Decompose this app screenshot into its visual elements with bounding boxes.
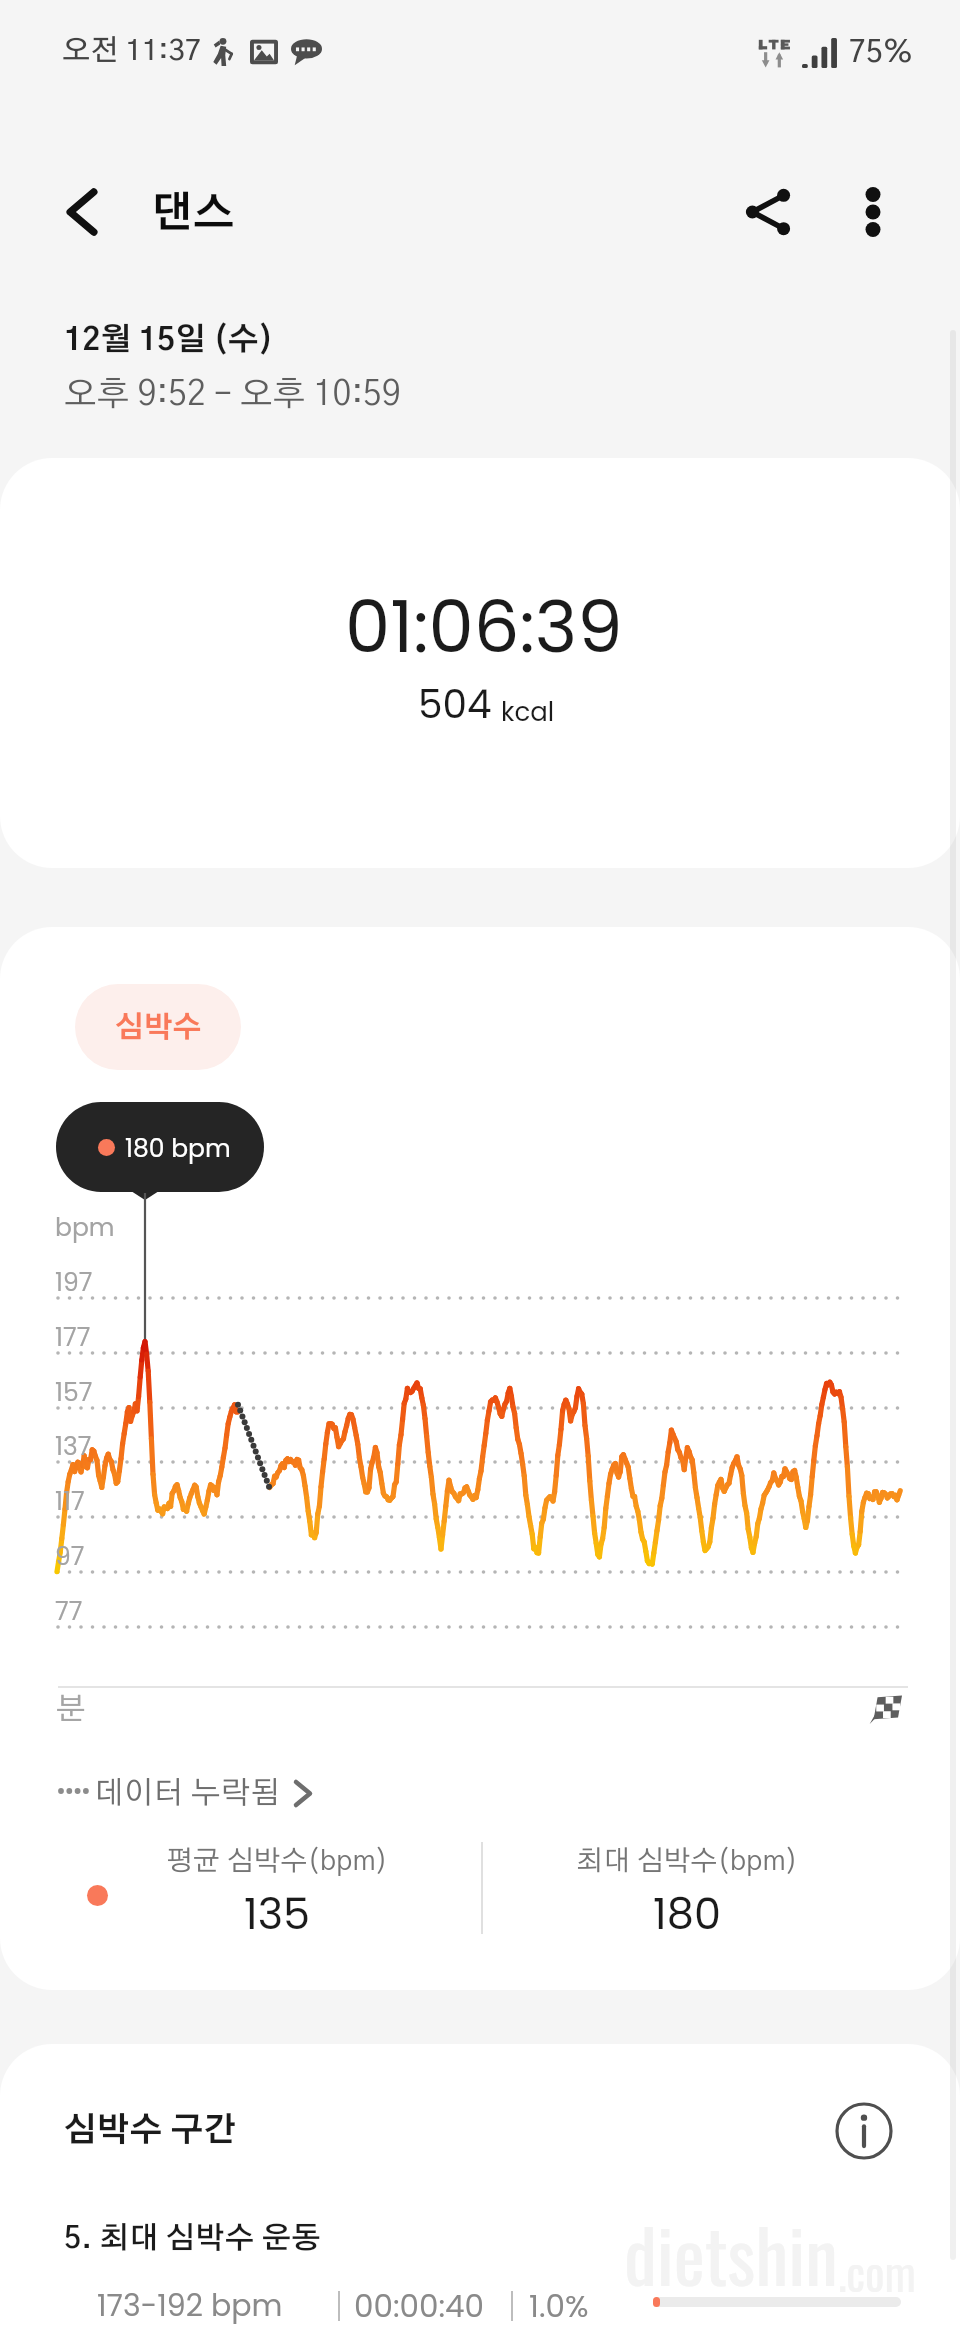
staticText: 심박수 [115,1014,202,1043]
staticText: 평균 심박수(bpm) [166,1848,389,1876]
staticText: 180 [653,1884,721,1944]
staticText: bpm [55,1210,115,1245]
staticText: kcal [501,694,555,730]
staticText: 00:00:40 [354,2284,485,2327]
staticText: 197 [55,1265,93,1300]
button[interactable]: 데이터 누락됨 [50,1772,321,1815]
staticText: 504 [418,677,492,732]
staticText: 173-192 bpm [97,2285,283,2327]
staticText: dietshin [624,2198,838,2308]
staticText: 심박수 구간 [64,2115,237,2148]
staticText: 데이터 누락됨 [94,1778,281,1809]
staticText: 5. 최대 심박수 운동 [64,2224,321,2254]
staticText: .com [838,2237,916,2305]
staticText: 오후 9:52 – 오후 10:59 [64,378,401,412]
staticText: 157 [55,1375,93,1410]
staticText: 01:06:39 [345,576,623,677]
staticText: 135 [244,1884,311,1944]
staticText: 오전 11:37 [62,37,202,66]
staticText: 97 [55,1539,85,1574]
staticText: 분 [56,1694,86,1725]
staticText: 177 [55,1320,91,1355]
staticText: 댄스 [151,193,235,235]
staticText: 137 [55,1429,92,1464]
button[interactable]: Information [817,2084,911,2178]
staticText: 180 bpm [125,1131,231,1166]
button[interactable]: More options [820,159,926,265]
button[interactable]: 심박수 [75,984,241,1070]
button[interactable]: Share [715,159,821,265]
staticText: 75% [849,38,913,68]
button[interactable]: Back [29,159,135,265]
staticText: 117 [55,1484,85,1519]
staticText: 77 [55,1594,83,1629]
staticText: 1.0% [529,2284,589,2327]
staticText: 최대 심박수(bpm) [576,1848,799,1876]
staticText: 12월 15일 (수) [64,325,274,356]
